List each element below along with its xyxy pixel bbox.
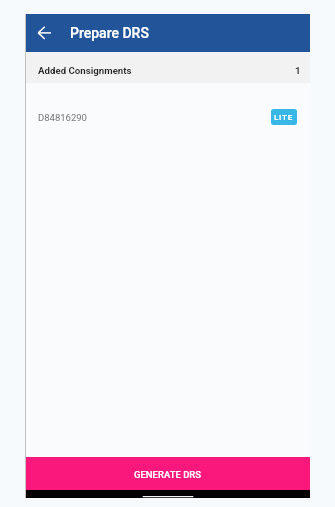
staticText: Prepare DRS (70, 25, 149, 41)
staticText: 1 (295, 65, 301, 76)
staticText: GENERATE DRS (134, 469, 202, 480)
staticText: LITE (274, 113, 294, 122)
staticText: D84816290 (38, 112, 87, 123)
button[interactable]: GENERATE DRS (26, 457, 310, 490)
button[interactable]: Navigate back (26, 15, 62, 51)
staticText: Added Consignments (38, 65, 132, 76)
button[interactable]: D84816290 (26, 83, 310, 152)
